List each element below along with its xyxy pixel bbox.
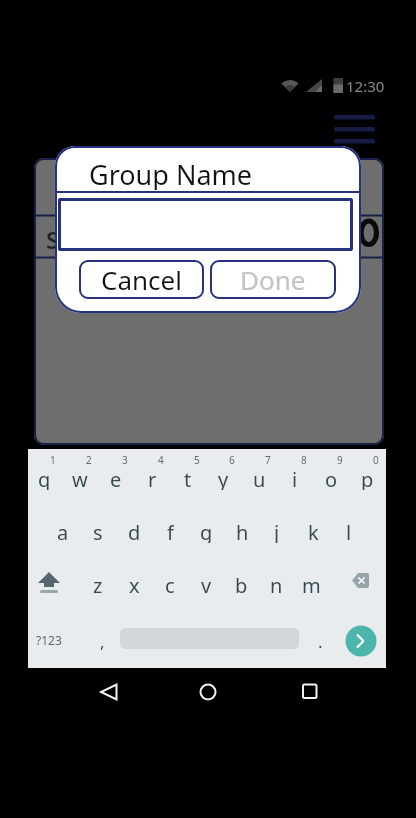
button[interactable]: z <box>84 572 112 596</box>
staticText: Group Name <box>89 156 253 190</box>
button[interactable]: j <box>263 519 291 543</box>
button[interactable]: ?123 <box>32 632 66 648</box>
staticText: 4 <box>158 453 164 467</box>
button[interactable] <box>330 110 380 150</box>
staticText: S <box>46 223 60 249</box>
button[interactable]: Cancel <box>79 260 204 299</box>
button[interactable]: Done <box>210 260 336 299</box>
staticText: 12:30 <box>346 76 385 94</box>
button[interactable]: b <box>227 572 255 596</box>
staticText: n <box>270 572 283 596</box>
button[interactable]: u <box>245 466 273 490</box>
staticText: p <box>361 466 374 490</box>
button[interactable]: n <box>262 572 290 596</box>
staticText: j <box>274 519 280 543</box>
staticText: v <box>201 572 212 596</box>
staticText: 1 <box>50 453 56 467</box>
staticText: 5 <box>194 453 200 467</box>
staticText: i <box>292 466 298 490</box>
staticText: a <box>57 519 69 543</box>
button[interactable] <box>120 626 299 652</box>
staticText: 7 <box>265 453 271 467</box>
button[interactable]: c <box>156 572 184 596</box>
button[interactable] <box>34 566 66 596</box>
staticText: k <box>308 519 319 543</box>
button[interactable]: p <box>353 466 381 490</box>
staticText: w <box>72 466 88 490</box>
staticText: c <box>165 572 175 596</box>
button[interactable]: t <box>174 466 202 490</box>
button[interactable] <box>295 678 325 706</box>
button[interactable]: v <box>192 572 220 596</box>
staticText: h <box>236 519 249 543</box>
button[interactable]: f <box>156 519 184 543</box>
staticText: 2 <box>86 453 92 467</box>
button[interactable] <box>345 625 377 657</box>
button[interactable]: h <box>228 519 256 543</box>
staticText: ?123 <box>36 632 62 648</box>
staticText: 6 <box>229 453 235 467</box>
button[interactable]: r <box>138 466 166 490</box>
staticText: 3 <box>122 453 128 467</box>
button[interactable] <box>58 198 353 251</box>
staticText: u <box>253 466 266 490</box>
button[interactable]: . <box>312 630 328 650</box>
staticText: b <box>235 572 248 596</box>
button[interactable]: l <box>335 519 363 543</box>
staticText: g <box>200 519 213 543</box>
button[interactable]: m <box>297 572 325 596</box>
staticText: Cancel <box>101 262 182 297</box>
button[interactable]: q <box>30 466 58 490</box>
staticText: r <box>148 466 157 490</box>
button[interactable]: x <box>120 572 148 596</box>
staticText: , <box>100 630 105 650</box>
button[interactable] <box>193 678 223 706</box>
staticText: l <box>346 519 352 543</box>
staticText: x <box>129 572 140 596</box>
button[interactable]: d <box>120 519 148 543</box>
staticText: e <box>110 466 122 490</box>
button[interactable]: k <box>299 519 327 543</box>
staticText: 9 <box>337 453 343 467</box>
button[interactable]: i <box>281 466 309 490</box>
staticText: o <box>325 466 338 490</box>
button[interactable]: s <box>84 519 112 543</box>
staticText: z <box>93 572 103 596</box>
staticText: y <box>218 466 229 490</box>
button[interactable]: g <box>192 519 220 543</box>
button[interactable]: y <box>209 466 237 490</box>
staticText: m <box>302 572 321 596</box>
button[interactable] <box>94 678 124 706</box>
button[interactable]: w <box>66 466 94 490</box>
button[interactable]: o <box>317 466 345 490</box>
staticText: f <box>167 519 174 543</box>
staticText: 0 <box>373 453 379 467</box>
staticText: s <box>93 519 103 543</box>
staticText: q <box>38 466 51 490</box>
staticText: t <box>184 466 192 490</box>
button[interactable]: , <box>94 630 110 650</box>
staticText: d <box>128 519 141 543</box>
button[interactable] <box>345 566 375 596</box>
button[interactable]: a <box>49 519 77 543</box>
staticText: . <box>318 630 323 650</box>
staticText: 8 <box>301 453 307 467</box>
staticText: Done <box>240 262 306 297</box>
button[interactable]: e <box>102 466 130 490</box>
